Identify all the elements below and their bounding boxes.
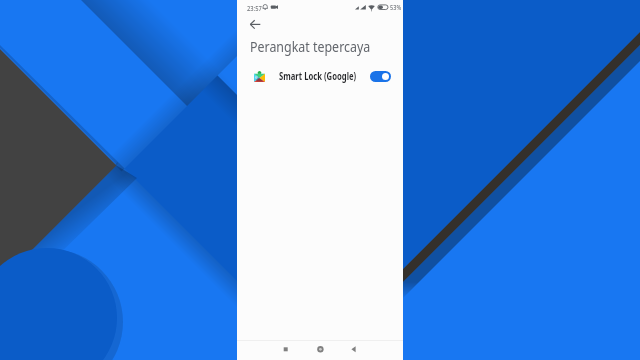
button[interactable]: Smart Lock (Google) [237,62,403,90]
staticText: Smart Lock (Google) [279,69,357,83]
staticText: Perangkat tepercaya [250,38,370,56]
button[interactable]: Back [242,15,261,34]
staticText: 23:57 [247,3,262,13]
button[interactable]: Toggle Smart Lock [370,71,391,82]
staticText: 53% [390,3,401,13]
